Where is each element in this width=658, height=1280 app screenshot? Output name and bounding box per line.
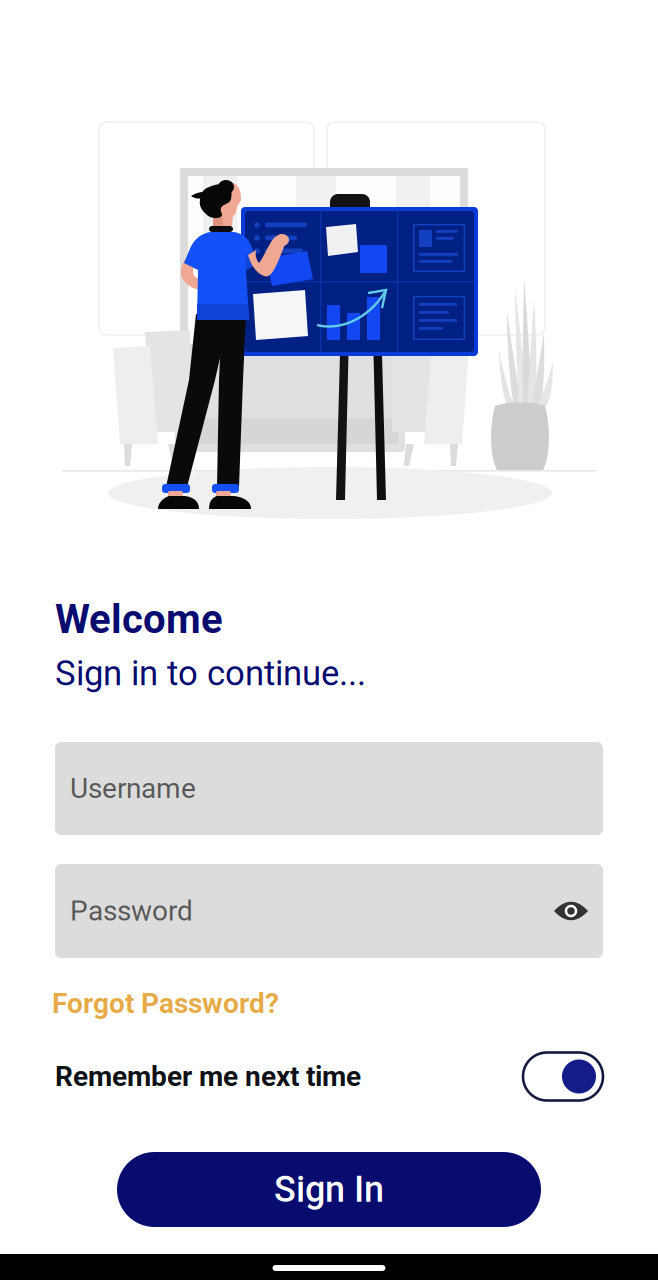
staticText: Forgot Password?	[52, 987, 279, 1020]
button[interactable]: Show password	[554, 899, 588, 922]
staticText: Sign in to continue...	[55, 653, 366, 694]
staticText: Welcome	[55, 596, 223, 643]
button[interactable]: Forgot Password?	[52, 987, 279, 1020]
button[interactable]: Sign In	[117, 1152, 541, 1227]
staticText: Username	[70, 772, 196, 805]
staticText: Sign In	[274, 1168, 384, 1211]
staticText: Remember me next time	[55, 1060, 361, 1093]
button[interactable]: Remember me next time	[523, 1052, 603, 1100]
staticText: Password	[70, 895, 193, 927]
